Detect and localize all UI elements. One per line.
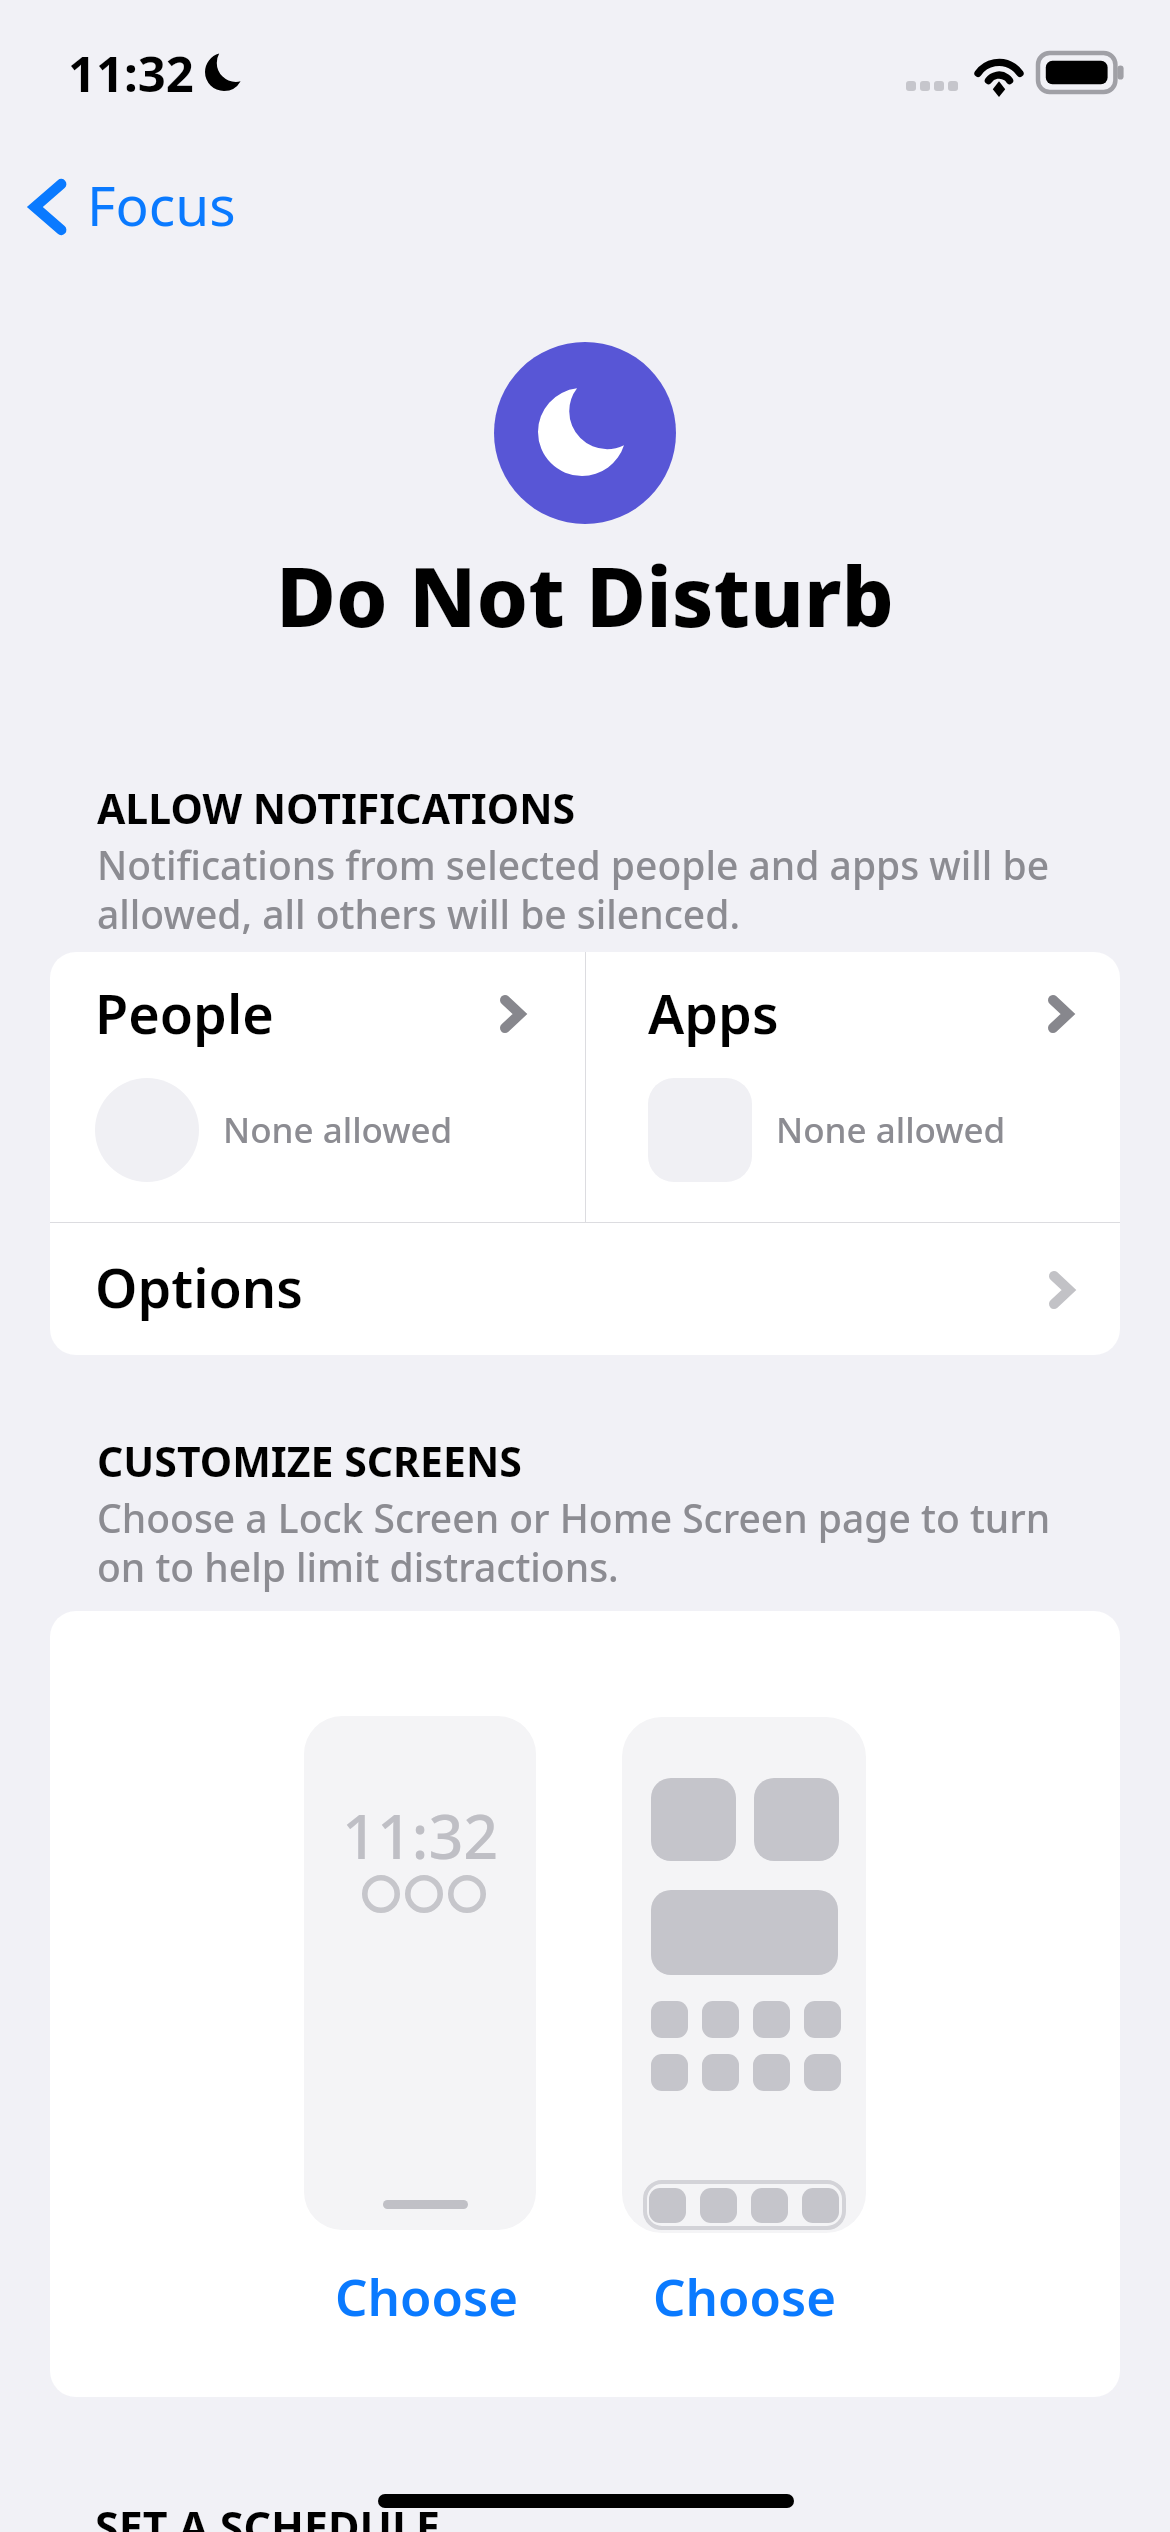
staticText: SET A SCHEDULE xyxy=(95,2497,441,2532)
staticText: ALLOW NOTIFICATIONS xyxy=(97,780,576,836)
button[interactable]: People xyxy=(50,952,585,1222)
staticText: Choose xyxy=(653,2261,836,2330)
staticText: 11:32 xyxy=(68,40,194,107)
button[interactable]: Apps xyxy=(586,952,1120,1222)
button[interactable]: Back to Focus xyxy=(16,159,248,254)
button[interactable]: Choose xyxy=(622,2257,866,2343)
staticText: None allowed xyxy=(776,1106,1006,1154)
button[interactable]: Options xyxy=(50,1223,1120,1355)
staticText: Focus xyxy=(87,167,236,242)
staticText: Choose a Lock Screen or Home Screen page… xyxy=(97,1491,1097,1594)
staticText: Do Not Disturb xyxy=(276,539,894,651)
staticText: 11:32 xyxy=(342,1794,499,1877)
staticText: None allowed xyxy=(223,1106,453,1154)
staticText: CUSTOMIZE SCREENS xyxy=(97,1433,522,1489)
staticText: People xyxy=(95,976,274,1050)
staticText: Notifications from selected people and a… xyxy=(97,838,1097,941)
staticText: Options xyxy=(95,1250,303,1324)
button[interactable]: Choose xyxy=(310,2257,542,2343)
staticText: Choose xyxy=(335,2261,518,2330)
staticText: Apps xyxy=(648,976,779,1050)
